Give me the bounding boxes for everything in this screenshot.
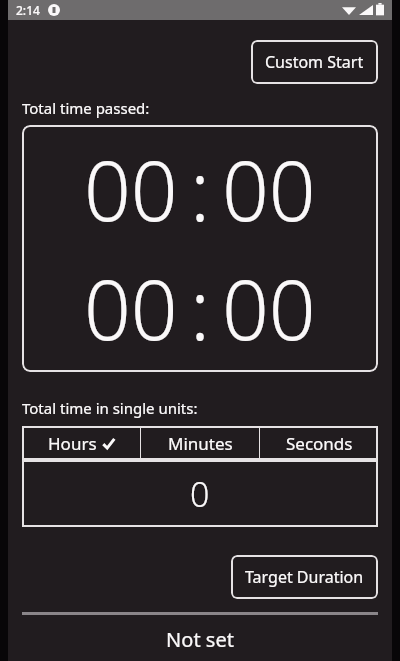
staticText: Not set xyxy=(22,626,378,653)
staticText: Seconds xyxy=(286,432,353,455)
staticText: 0 xyxy=(190,471,210,517)
staticText: 00 xyxy=(84,252,178,364)
staticText: Target Duration xyxy=(245,566,364,588)
staticText: Total time in single units: xyxy=(22,398,198,418)
staticText: Custom Start xyxy=(265,51,364,73)
staticText: 00 xyxy=(222,133,316,245)
staticText: Minutes xyxy=(168,432,233,455)
staticText: 2:14 xyxy=(16,2,40,18)
button[interactable]: Target Duration xyxy=(231,555,378,599)
button[interactable]: Custom Start xyxy=(251,40,378,84)
staticText: 00 xyxy=(222,252,316,364)
button[interactable]: Minutes xyxy=(141,426,259,460)
staticText: Total time passed: xyxy=(22,98,150,118)
button[interactable]: Seconds xyxy=(260,426,378,460)
staticText: : xyxy=(190,133,211,245)
staticText: Hours xyxy=(48,432,97,455)
staticText: : xyxy=(190,252,211,364)
button[interactable]: Hours xyxy=(22,426,140,460)
staticText: 00 xyxy=(84,133,178,245)
